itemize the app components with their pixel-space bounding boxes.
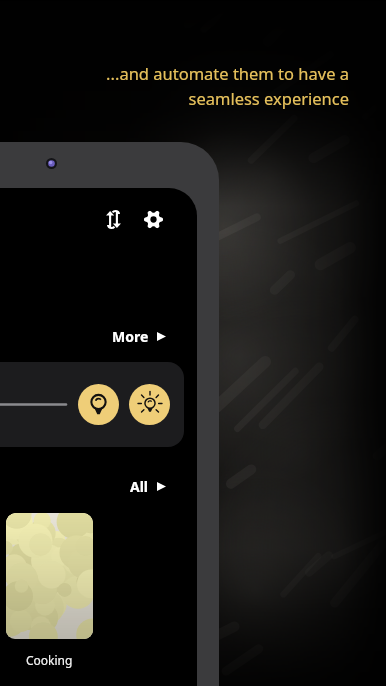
button[interactable]: Dim light <box>78 384 119 425</box>
button[interactable]: All <box>126 474 170 499</box>
button[interactable]: Bright light <box>129 384 170 425</box>
button[interactable]: More <box>108 324 170 349</box>
staticText: All <box>130 477 149 496</box>
staticText: Cooking <box>26 652 73 668</box>
button[interactable]: Settings <box>136 202 170 236</box>
button[interactable]: Sync <box>96 202 130 236</box>
button[interactable]: Dim light <box>0 362 184 447</box>
staticText: More <box>112 327 149 346</box>
staticText: ...and automate them to have a seamless … <box>106 62 349 109</box>
button[interactable]: Cooking <box>6 513 93 668</box>
